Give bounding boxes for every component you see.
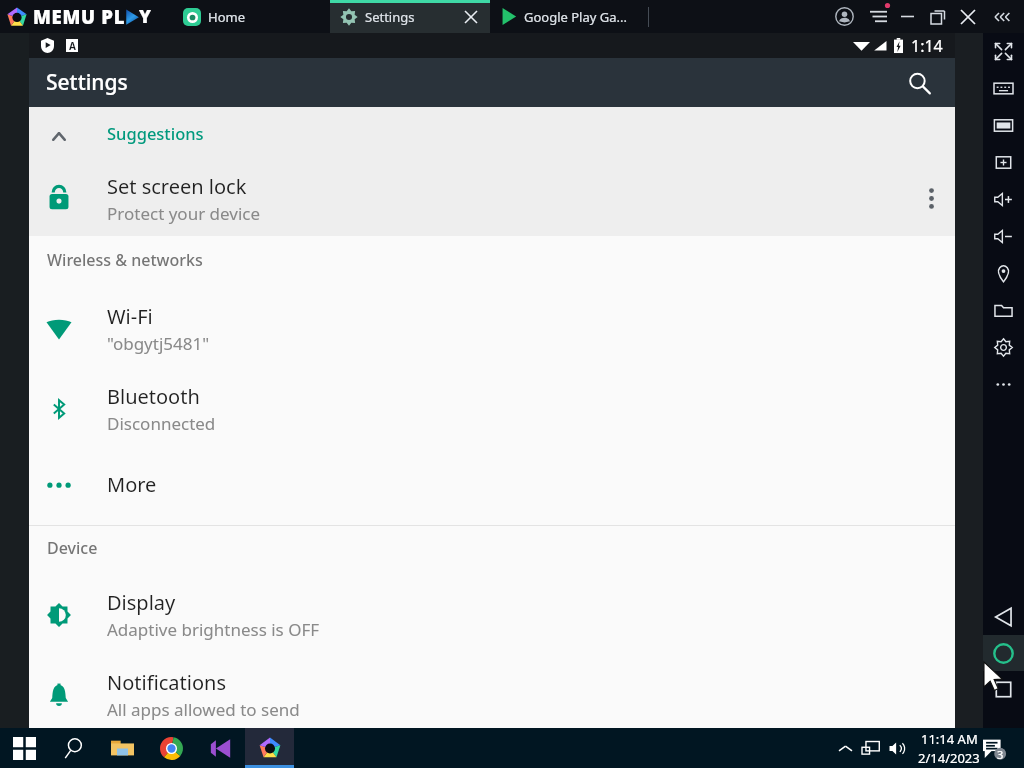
button[interactable]: Recents: [983, 671, 1024, 707]
staticText: 3: [997, 747, 1004, 762]
staticText: Suggestions: [107, 122, 204, 144]
button[interactable]: Install APK: [983, 107, 1024, 144]
button[interactable]: File Explorer: [98, 728, 147, 768]
button[interactable]: Close: [953, 0, 983, 33]
button[interactable]: Settings: [330, 0, 490, 33]
staticText: Wireless & networks: [47, 249, 203, 271]
staticText: Home: [208, 8, 245, 26]
button[interactable]: Wi-Fi: [29, 283, 955, 363]
staticText: "obgytj5481": [107, 332, 210, 355]
button[interactable]: Search: [895, 59, 943, 107]
button[interactable]: Display: [29, 569, 955, 649]
button[interactable]: Emulator settings: [983, 329, 1024, 366]
button[interactable]: Screenshot: [983, 144, 1024, 181]
staticText: MEMU PL: [33, 4, 126, 29]
staticText: Y: [139, 4, 151, 29]
button[interactable]: Suggestions: [29, 107, 955, 159]
staticText: Disconnected: [107, 412, 216, 435]
staticText: Google Play Ga...: [524, 8, 627, 26]
button[interactable]: Chrome: [147, 728, 196, 768]
button[interactable]: Home: [983, 635, 1024, 671]
button[interactable]: Close tab: [458, 4, 484, 30]
button[interactable]: More options: [908, 175, 954, 221]
staticText: Settings: [365, 8, 415, 26]
staticText: 2/14/2023: [918, 749, 980, 767]
staticText: Adaptive brightness is OFF: [107, 618, 320, 641]
button[interactable]: Network: [856, 728, 886, 768]
staticText: Set screen lock: [107, 173, 247, 200]
button[interactable]: Volume down: [983, 218, 1024, 255]
button[interactable]: Search: [49, 728, 98, 768]
button[interactable]: Start: [0, 728, 49, 768]
button[interactable]: Keyboard: [983, 70, 1024, 107]
staticText: Notifications: [107, 669, 226, 696]
button[interactable]: More: [29, 443, 955, 525]
button[interactable]: Maximize: [923, 0, 953, 33]
button[interactable]: Volume up: [983, 181, 1024, 218]
button[interactable]: Notifications: [29, 649, 955, 728]
button[interactable]: More: [983, 366, 1024, 403]
button[interactable]: Fullscreen: [983, 33, 1024, 70]
button[interactable]: Visual Studio: [196, 728, 245, 768]
button[interactable]: MEmu Play: [245, 728, 294, 768]
button[interactable]: Google Play Ga...: [490, 0, 648, 33]
button[interactable]: Set screen lock: [29, 159, 955, 236]
staticText: Device: [47, 537, 98, 559]
button[interactable]: Minimize: [892, 0, 922, 33]
staticText: Wi-Fi: [107, 303, 153, 330]
button[interactable]: Account: [829, 0, 859, 33]
button[interactable]: Files: [983, 292, 1024, 329]
staticText: More: [107, 471, 157, 498]
button[interactable]: Menu: [863, 0, 893, 33]
staticText: Bluetooth: [107, 383, 200, 410]
button[interactable]: Collapse sidebar: [988, 0, 1018, 33]
staticText: Protect your device: [107, 202, 261, 225]
staticText: 11:14 AM: [921, 730, 978, 748]
button[interactable]: Location: [983, 255, 1024, 292]
button[interactable]: Show hidden icons: [833, 728, 857, 768]
staticText: Display: [107, 589, 176, 616]
button[interactable]: Notifications: [979, 728, 1009, 768]
button[interactable]: Bluetooth: [29, 363, 955, 443]
button[interactable]: Volume: [884, 728, 910, 768]
button[interactable]: Back: [983, 599, 1024, 635]
button[interactable]: Home: [173, 0, 330, 33]
staticText: All apps allowed to send: [107, 698, 300, 721]
staticText: Settings: [46, 68, 128, 97]
staticText: A: [69, 39, 76, 52]
staticText: 1:14: [911, 35, 943, 57]
